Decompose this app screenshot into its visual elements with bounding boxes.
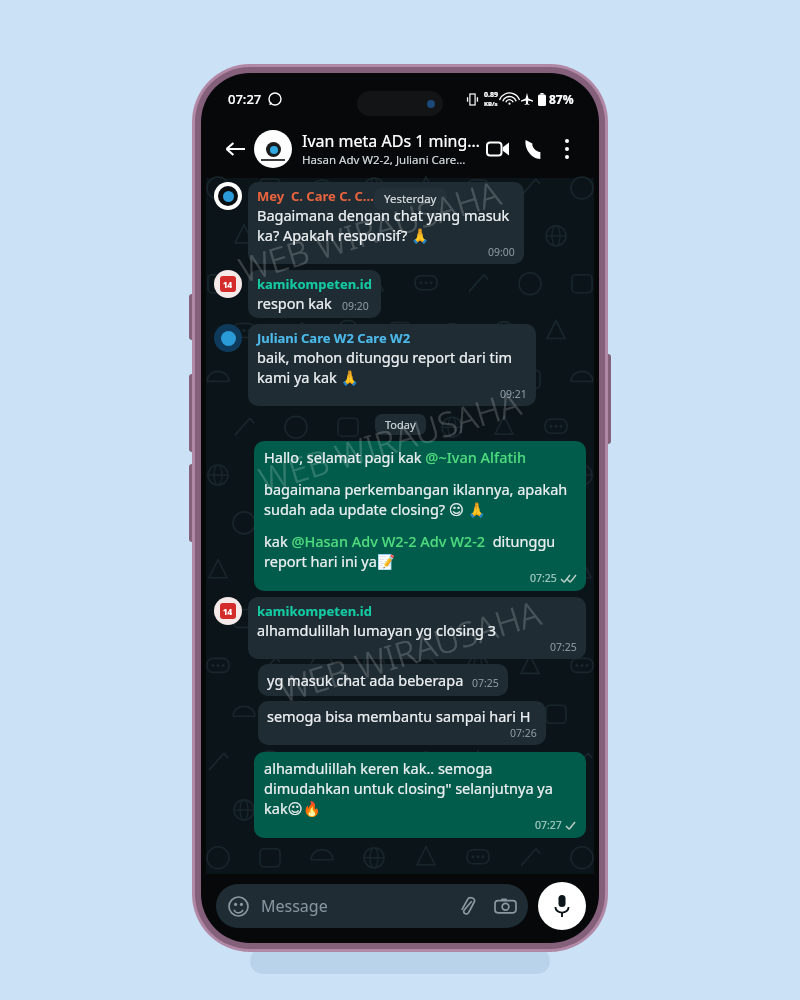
staticText: Mey C. Care C. C… [257,187,374,205]
button[interactable]: kamikompeten.id [248,597,586,659]
button[interactable]: Mey C. Care C. C… [248,182,524,264]
staticText: Yesterday [384,191,437,207]
button[interactable]: kamikompeten.id [248,270,381,318]
staticText: 07:27 [535,818,562,832]
staticText: alhamdulillah keren kak.. semoga dimudah… [264,758,576,818]
staticText: respon kak [257,293,332,313]
staticText: 87% [549,91,574,107]
button[interactable]: Ivan meta ADs 1 ming… [302,130,480,168]
staticText: Message [261,895,328,917]
staticText: 14 [223,606,233,617]
staticText: KB/s [484,100,498,108]
button[interactable]: Hallo, selamat pagi kak @~Ivan Alfatih [254,441,586,591]
staticText: 07:25 [530,571,557,585]
staticText: 09:00 [488,245,515,259]
staticText: kamikompeten.id [257,275,372,293]
staticText: kak @Hasan Adv W2-2 Adv W2-2 ditunggu re… [264,531,576,571]
button[interactable]: yg masuk chat ada beberapa [258,664,508,696]
staticText: Hasan Adv W2-2, Juliani Care… [302,152,466,168]
button[interactable]: More options [552,134,582,164]
staticText: baik, mohon ditunggu report dari tim kam… [257,347,527,387]
staticText: 14 [223,279,233,290]
staticText: bagaimana perkembangan iklannya, apakah … [264,479,576,519]
other: Attach [458,897,477,916]
button[interactable]: alhamdulillah keren kak.. semoga dimudah… [254,752,586,838]
staticText: Today [385,417,416,432]
staticText: WEB WIRAUSAHA [233,169,506,293]
staticText: yg masuk chat ada beberapa [267,670,464,690]
staticText: WEB WIRAUSAHA [273,589,546,713]
button[interactable] [254,130,292,168]
button[interactable]: Back [218,132,252,166]
button[interactable]: Video call [480,131,516,167]
staticText: 0.89 [484,90,498,100]
button[interactable]: Voice message [538,882,586,930]
staticText: 07:25 [550,640,577,654]
staticText: WEB WIRAUSAHA [253,379,526,503]
staticText: 09:20 [342,299,369,313]
staticText: 07:25 [472,676,499,690]
staticText: kamikompeten.id [257,602,372,620]
staticText: Hallo, selamat pagi kak @~Ivan Alfatih [264,447,527,467]
button[interactable]: Voice call [516,131,552,167]
button[interactable]: Message [216,884,528,928]
staticText: Juliani Care W2 Care W2 [257,329,411,347]
staticText: Ivan meta ADs 1 ming… [302,130,480,152]
staticText: alhamdulillah lumayan yg closing 3 [257,620,497,640]
staticText: 07:26 [510,726,537,740]
staticText: semoga bisa membantu sampai hari H [267,706,531,726]
staticText: 09:21 [500,387,527,401]
button[interactable]: semoga bisa membantu sampai hari H [258,701,546,745]
staticText: 07:27 [228,90,262,108]
other: Camera [495,896,516,917]
staticText: Bagaimana dengan chat yang masuk ka? Apa… [257,205,515,245]
button[interactable]: Juliani Care W2 Care W2 [248,324,536,406]
